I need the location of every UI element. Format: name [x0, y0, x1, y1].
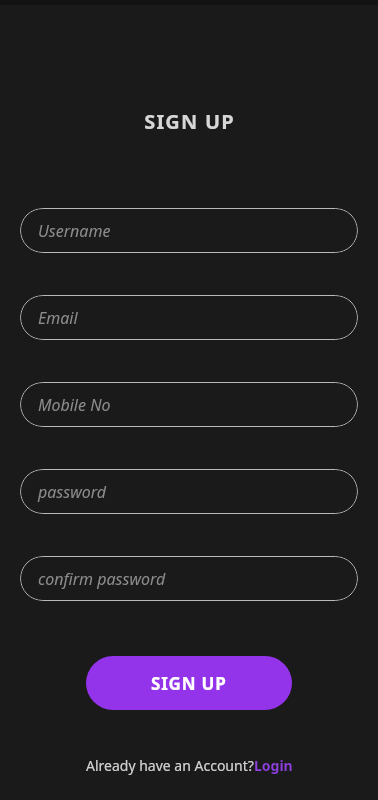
button[interactable]: confirm password	[20, 556, 358, 601]
staticText: Username	[38, 220, 111, 242]
staticText: SIGN UP	[144, 108, 235, 135]
staticText: SIGN UP	[151, 672, 227, 695]
button[interactable]: Email	[20, 295, 358, 340]
staticText: confirm password	[38, 568, 166, 590]
button[interactable]: SIGN UP	[86, 656, 292, 710]
staticText: Mobile No	[38, 394, 111, 416]
staticText: Email	[38, 307, 78, 329]
staticText: password	[38, 481, 107, 503]
button[interactable]: Username	[20, 208, 358, 253]
staticText: Already have an Account?	[86, 756, 254, 775]
button[interactable]: password	[20, 469, 358, 514]
button[interactable]: Mobile No	[20, 382, 358, 427]
staticText: Login	[254, 756, 293, 775]
button[interactable]: Already have an Account?	[86, 756, 293, 775]
